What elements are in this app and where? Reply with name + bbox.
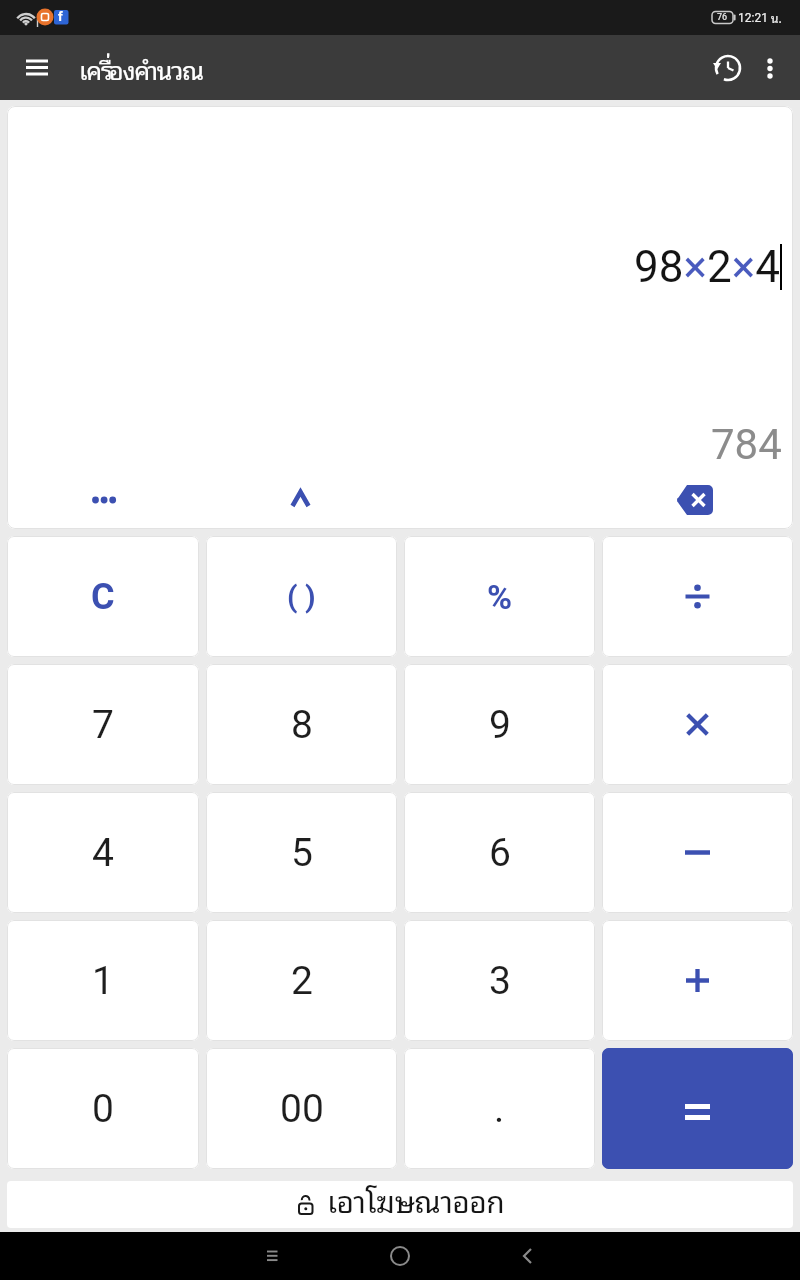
staticText: %: [487, 577, 513, 617]
staticText: 6: [489, 830, 511, 876]
staticText: เอาโฆษณาออก: [327, 1181, 505, 1222]
staticText: 00: [280, 1086, 324, 1132]
button[interactable]: [602, 664, 793, 785]
button[interactable]: 7: [7, 664, 199, 785]
staticText: น.: [768, 8, 782, 27]
staticText: เครื่องคำนวณ: [79, 49, 203, 89]
button[interactable]: [250, 1234, 294, 1278]
button[interactable]: 00: [206, 1048, 397, 1169]
staticText: f: [58, 9, 63, 24]
staticText: 98×2×4: [634, 241, 780, 293]
button[interactable]: [750, 48, 790, 88]
staticText: 9: [489, 702, 511, 748]
staticText: 3: [489, 958, 511, 1004]
button[interactable]: 4: [7, 792, 199, 913]
button[interactable]: 2: [206, 920, 397, 1041]
staticText: 1: [92, 958, 114, 1004]
button[interactable]: [79, 476, 143, 524]
staticText: 8: [291, 702, 313, 748]
button[interactable]: 9: [404, 664, 595, 785]
button[interactable]: [706, 46, 750, 90]
staticText: 7: [92, 702, 114, 748]
staticText: C: [91, 576, 115, 618]
staticText: 4: [92, 830, 114, 876]
button[interactable]: [275, 476, 339, 524]
button[interactable]: [602, 792, 793, 913]
button[interactable]: [13, 44, 61, 92]
button[interactable]: 8: [206, 664, 397, 785]
button[interactable]: ( ): [206, 536, 397, 657]
button[interactable]: .: [404, 1048, 595, 1169]
button[interactable]: เอาโฆษณาออก: [7, 1181, 793, 1228]
button[interactable]: [602, 920, 793, 1041]
button[interactable]: 6: [404, 792, 595, 913]
staticText: 5: [291, 830, 313, 876]
staticText: 784: [711, 420, 782, 469]
button[interactable]: 1: [7, 920, 199, 1041]
staticText: 76: [717, 12, 728, 23]
button[interactable]: [505, 1234, 549, 1278]
button[interactable]: [602, 536, 793, 657]
button[interactable]: [378, 1234, 422, 1278]
button[interactable]: C: [7, 536, 199, 657]
button[interactable]: 5: [206, 792, 397, 913]
button[interactable]: 3: [404, 920, 595, 1041]
staticText: 12:21: [738, 11, 768, 25]
staticText: .: [494, 1086, 505, 1132]
staticText: 2: [291, 958, 313, 1004]
button[interactable]: 0: [7, 1048, 199, 1169]
button[interactable]: [666, 476, 738, 524]
button[interactable]: [602, 1048, 793, 1169]
staticText: 0: [92, 1086, 114, 1132]
staticText: ( ): [287, 579, 316, 614]
button[interactable]: %: [404, 536, 595, 657]
